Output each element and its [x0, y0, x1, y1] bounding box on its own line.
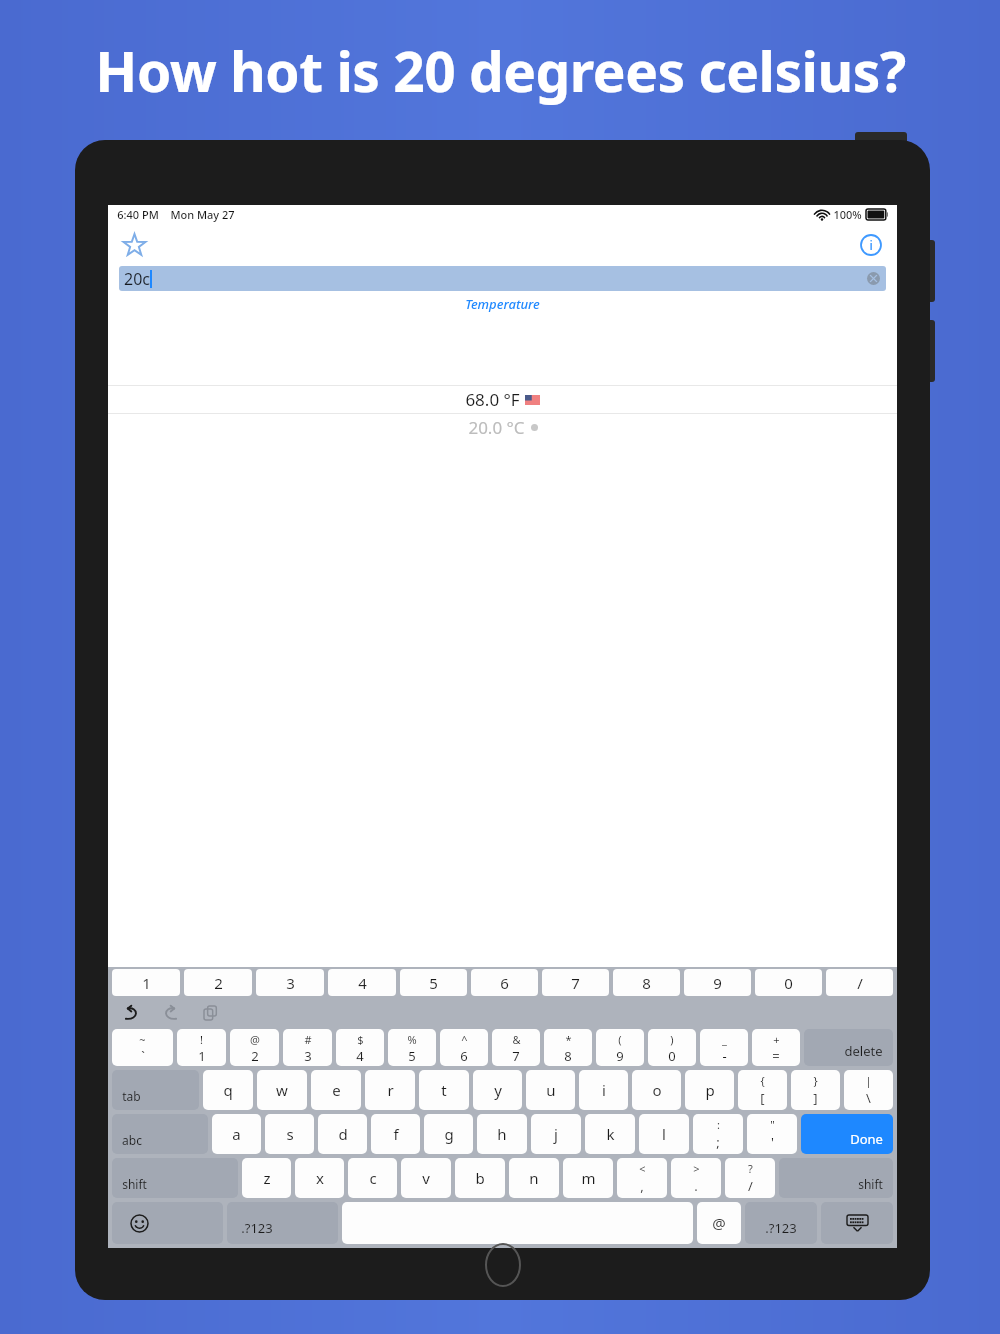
staticText: Temperature	[108, 295, 897, 313]
staticText: ^	[461, 1032, 468, 1047]
button[interactable]: tab	[112, 1070, 199, 1110]
button[interactable]: e	[311, 1070, 361, 1110]
staticText: j	[554, 1124, 558, 1144]
button[interactable]: %	[388, 1029, 436, 1066]
staticText: u	[546, 1080, 556, 1100]
staticText: a	[232, 1124, 241, 1144]
button[interactable]: Favorite	[117, 228, 151, 262]
button[interactable]: >	[671, 1158, 721, 1198]
button[interactable]: ^	[440, 1029, 488, 1066]
button[interactable]: b	[455, 1158, 505, 1198]
staticText: q	[223, 1080, 233, 1100]
button[interactable]: o	[632, 1070, 681, 1110]
button[interactable]: $	[336, 1029, 384, 1066]
button[interactable]: Clear	[867, 272, 880, 285]
button[interactable]: n	[509, 1158, 559, 1198]
button[interactable]: "	[747, 1114, 797, 1154]
button[interactable]: y	[473, 1070, 522, 1110]
button[interactable]	[342, 1202, 693, 1244]
button[interactable]: h	[477, 1114, 527, 1154]
button[interactable]: _	[700, 1029, 748, 1066]
button[interactable]: 3	[256, 969, 324, 996]
staticText: {	[760, 1073, 765, 1088]
button[interactable]: +	[752, 1029, 800, 1066]
button[interactable]: 0	[755, 969, 822, 996]
button[interactable]: 6	[471, 969, 538, 996]
button[interactable]: .?123	[227, 1202, 338, 1244]
button[interactable]: @	[230, 1029, 279, 1066]
button[interactable]: j	[531, 1114, 581, 1154]
staticText: o	[652, 1080, 662, 1100]
button[interactable]: 9	[684, 969, 751, 996]
button[interactable]: t	[419, 1070, 469, 1110]
button[interactable]: }	[791, 1070, 840, 1110]
button[interactable]: s	[265, 1114, 314, 1154]
staticText: 2	[251, 1047, 259, 1063]
button[interactable]: v	[401, 1158, 451, 1198]
button[interactable]: abc	[112, 1114, 208, 1154]
button[interactable]: z	[242, 1158, 291, 1198]
button[interactable]: q	[203, 1070, 253, 1110]
staticText: ,	[640, 1177, 644, 1195]
staticText: 100%	[833, 207, 862, 222]
staticText: -	[722, 1047, 727, 1063]
button[interactable]: |	[844, 1070, 893, 1110]
button[interactable]: x	[295, 1158, 344, 1198]
button[interactable]: p	[685, 1070, 734, 1110]
button[interactable]: {	[738, 1070, 787, 1110]
button[interactable]: 8	[613, 969, 680, 996]
button[interactable]: Hide keyboard	[821, 1202, 893, 1244]
button[interactable]: Redo	[160, 1002, 182, 1024]
staticText: s	[286, 1124, 294, 1144]
button[interactable]: (	[596, 1029, 644, 1066]
button[interactable]: *	[544, 1029, 592, 1066]
button[interactable]: 5	[400, 969, 467, 996]
button[interactable]: .?123	[745, 1202, 817, 1244]
button[interactable]: shift	[779, 1158, 893, 1198]
button[interactable]: l	[639, 1114, 689, 1154]
staticText: .	[694, 1177, 698, 1195]
button[interactable]: 7	[542, 969, 609, 996]
button[interactable]: shift	[112, 1158, 238, 1198]
button[interactable]: c	[348, 1158, 397, 1198]
button[interactable]: d	[318, 1114, 367, 1154]
button[interactable]: Info	[854, 228, 888, 262]
button[interactable]: f	[371, 1114, 420, 1154]
staticText: Done	[850, 1130, 883, 1148]
button[interactable]: !	[177, 1029, 226, 1066]
button[interactable]: w	[257, 1070, 307, 1110]
button[interactable]: Undo	[120, 1002, 142, 1024]
staticText: (	[618, 1032, 622, 1047]
button[interactable]: 4	[328, 969, 396, 996]
button[interactable]: 20c	[119, 266, 886, 291]
button[interactable]: @	[697, 1202, 741, 1244]
staticText: 4	[356, 1047, 364, 1063]
button[interactable]: )	[648, 1029, 696, 1066]
button[interactable]: u	[526, 1070, 575, 1110]
staticText: 9	[616, 1047, 624, 1063]
button[interactable]: <	[617, 1158, 667, 1198]
button[interactable]: i	[579, 1070, 628, 1110]
staticText: e	[332, 1080, 341, 1100]
button[interactable]: :	[693, 1114, 743, 1154]
button[interactable]: 1	[112, 969, 180, 996]
button[interactable]: m	[563, 1158, 613, 1198]
button[interactable]: r	[365, 1070, 415, 1110]
staticText: l	[662, 1124, 666, 1144]
button[interactable]: ~	[112, 1029, 173, 1066]
button[interactable]: delete	[804, 1029, 893, 1066]
button[interactable]: 2	[184, 969, 252, 996]
button[interactable]: k	[585, 1114, 635, 1154]
staticText: 4	[358, 973, 367, 993]
button[interactable]: g	[424, 1114, 473, 1154]
button[interactable]: Paste	[200, 1002, 222, 1024]
button[interactable]: ?	[725, 1158, 775, 1198]
button[interactable]: Emoji	[112, 1202, 223, 1244]
button[interactable]: /	[826, 969, 893, 996]
button[interactable]: Done	[801, 1114, 893, 1154]
button[interactable]: &	[492, 1029, 540, 1066]
button[interactable]: a	[212, 1114, 261, 1154]
button[interactable]: #	[283, 1029, 332, 1066]
staticText: @	[712, 1213, 726, 1233]
staticText: t	[441, 1080, 447, 1100]
